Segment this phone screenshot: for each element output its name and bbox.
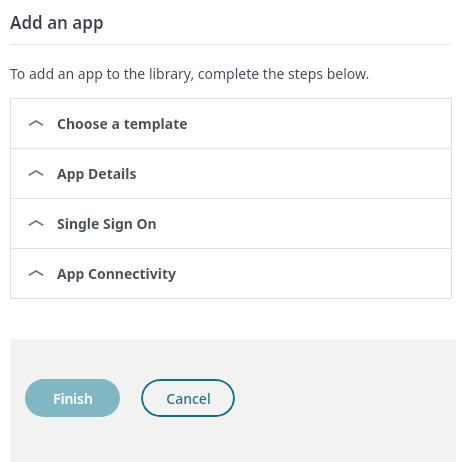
button[interactable]: Collapse App Connectivity [10, 248, 452, 298]
staticText: Single Sign On [57, 214, 157, 233]
other: Collapse App Connectivity [26, 263, 46, 283]
other: Collapse Choose a template [26, 113, 46, 133]
other: Collapse App Details [26, 163, 46, 183]
button[interactable]: Collapse Single Sign On [10, 198, 452, 248]
staticText: Choose a template [57, 114, 188, 133]
staticText: App Details [57, 164, 137, 183]
button[interactable]: Collapse App Details [10, 148, 452, 198]
staticText: Cancel [166, 389, 211, 408]
staticText: Finish [53, 389, 93, 408]
button[interactable]: Collapse Choose a template [10, 98, 452, 148]
staticText: App Connectivity [57, 264, 177, 283]
other: Collapse Single Sign On [26, 213, 46, 233]
staticText: Add an app [10, 11, 104, 34]
button[interactable]: Cancel [141, 379, 235, 417]
button[interactable]: Finish [25, 379, 120, 417]
staticText: To add an app to the library, complete t… [10, 64, 370, 83]
